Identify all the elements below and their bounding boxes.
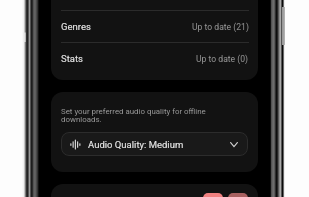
staticText: Up to date (0) (196, 54, 249, 64)
button[interactable] (203, 193, 223, 197)
button[interactable] (228, 193, 248, 197)
button[interactable]: Audio quality (61, 132, 248, 156)
staticText: Up to date (21) (192, 22, 249, 32)
staticText: Audio Quality: Medium (88, 139, 184, 150)
button[interactable]: Stats (51, 43, 258, 74)
staticText: Set your preferred audio quality for off… (61, 107, 206, 124)
other: Audio quality (70, 139, 80, 150)
staticText: Stats (61, 53, 83, 64)
staticText: Genres (61, 21, 91, 32)
button[interactable]: Genres (51, 11, 258, 42)
other: Expand audio quality options (230, 141, 238, 148)
